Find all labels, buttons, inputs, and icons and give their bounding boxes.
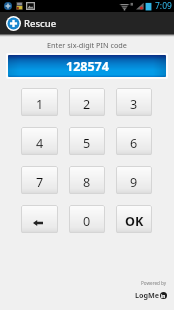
staticText: Powered by [141,280,167,286]
button[interactable]: 1 [21,88,58,116]
button[interactable]: Rescue [6,16,57,31]
staticText: in [161,293,166,299]
staticText: 7:09 [155,0,172,12]
staticText: 0 [83,213,91,230]
button[interactable]: 0 [69,205,105,233]
staticText: 6 [130,135,138,152]
staticText: 4 [36,135,44,152]
button[interactable]: OK [116,205,152,233]
staticText: 128574 [66,58,109,75]
button[interactable]: 9 [116,166,152,194]
staticText: 1 [36,96,44,113]
button[interactable]: Backspace [21,205,58,233]
staticText: 8 [83,174,91,191]
staticText: 9 [130,174,138,191]
staticText: Rescue [24,17,57,30]
button[interactable]: 8 [69,166,105,194]
staticText: 5 [83,135,91,152]
button[interactable]: 7 [21,166,58,194]
button[interactable]: 5 [69,127,105,155]
staticText: OK [125,213,144,230]
button[interactable]: 6 [116,127,152,155]
button[interactable]: 3 [116,88,152,116]
staticText: 3 [130,96,138,113]
button[interactable]: 128574 [8,55,166,77]
staticText: 2 [83,96,91,113]
staticText: Enter six-digit PIN code [0,40,174,50]
staticText: LogMe [135,290,160,300]
button[interactable]: 2 [69,88,105,116]
button[interactable]: 4 [21,127,58,155]
staticText: 7 [36,174,44,191]
